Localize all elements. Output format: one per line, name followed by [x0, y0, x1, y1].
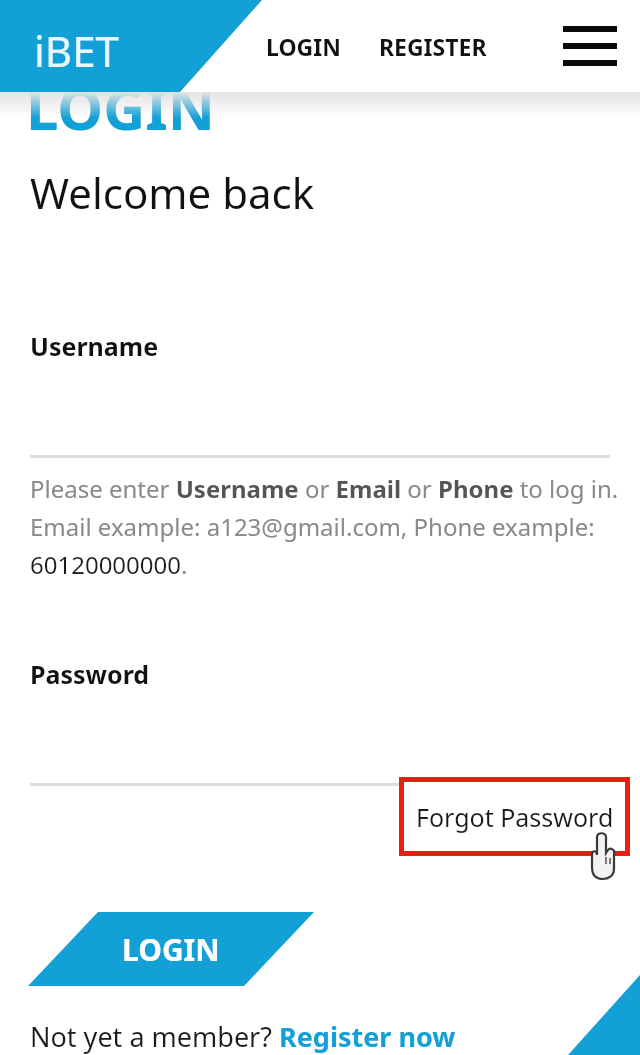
staticText: LOGIN [122, 929, 220, 970]
button[interactable]: Not yet a member? [30, 1018, 456, 1055]
staticText: Register now [279, 1018, 456, 1055]
staticText: Please enter Username or Email or Phone … [30, 472, 619, 581]
button[interactable]: REGISTER [375, 23, 491, 70]
button[interactable]: LOGIN [28, 912, 314, 986]
staticText: LOGIN [266, 31, 341, 62]
staticText: Password [30, 657, 150, 691]
staticText: Username [30, 329, 159, 363]
staticText: REGISTER [379, 31, 487, 62]
button[interactable]: iBET home [0, 0, 640, 92]
button[interactable]: Menu [560, 20, 620, 72]
staticText: Not yet a member? [30, 1018, 279, 1055]
staticText: Forgot Password [416, 800, 614, 834]
staticText: iBET [34, 22, 119, 79]
button[interactable]: Forgot Password [399, 777, 630, 856]
staticText: Welcome back [30, 164, 315, 221]
staticText: LOGIN [26, 68, 215, 147]
button[interactable] [0, 691, 640, 783]
button[interactable]: LOGIN [262, 23, 345, 70]
